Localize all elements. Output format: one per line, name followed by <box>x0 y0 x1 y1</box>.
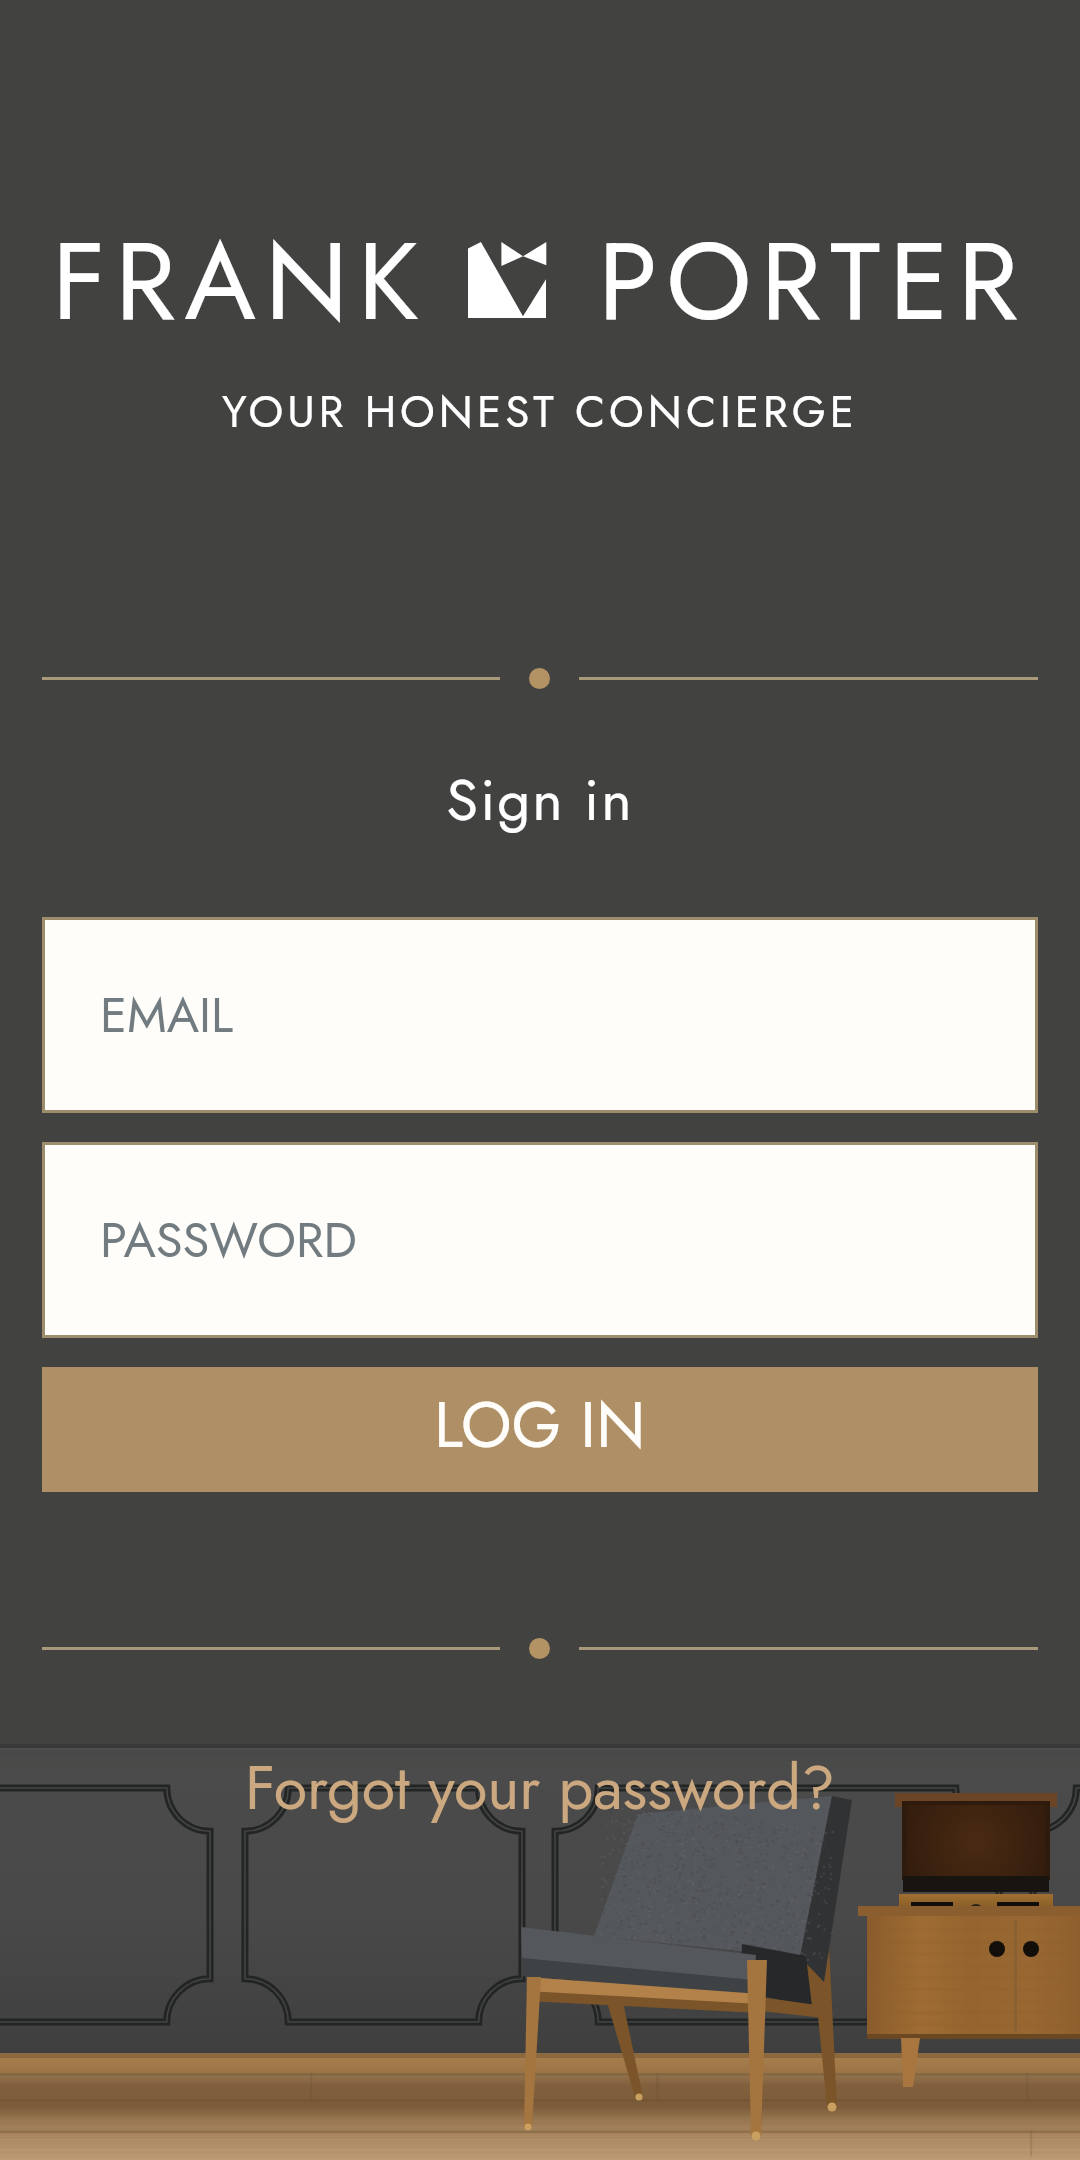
button[interactable]: EMAIL <box>45 920 1035 1110</box>
button[interactable]: LOG IN <box>42 1367 1038 1492</box>
staticText: PASSWORD <box>100 1205 357 1276</box>
staticText: YOUR HONEST CONCIERGE <box>0 380 1080 444</box>
staticText: PORTER <box>598 203 1028 359</box>
staticText: Forgot your password? <box>245 1744 835 1832</box>
staticText: FRANK <box>52 203 428 359</box>
button[interactable]: Forgot your password? <box>0 1742 1080 1834</box>
staticText: EMAIL <box>100 980 234 1051</box>
staticText: LOG IN <box>434 1379 646 1471</box>
staticText: Sign in <box>0 758 1080 842</box>
button[interactable]: PASSWORD <box>45 1145 1035 1335</box>
